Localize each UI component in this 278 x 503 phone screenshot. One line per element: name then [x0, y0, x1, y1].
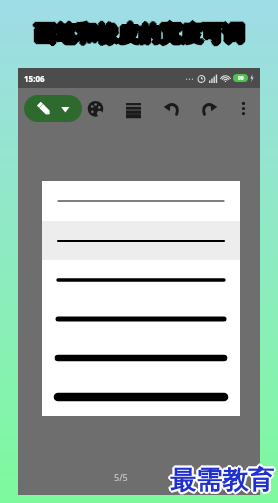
- staticText: 最需教育: [171, 463, 275, 496]
- staticText: 画笔和橡皮的宽度可调: [34, 23, 244, 49]
- staticText: 最需教育: [168, 464, 272, 497]
- button[interactable]: Undo: [158, 95, 184, 121]
- staticText: 最需教育: [170, 464, 274, 497]
- button[interactable]: Redo: [196, 95, 222, 121]
- staticText: 99: [238, 75, 244, 82]
- staticText: 最需教育: [171, 465, 275, 498]
- staticText: 最需教育: [169, 465, 273, 498]
- button[interactable]: Colour palette: [82, 95, 108, 121]
- staticText: 画笔和橡皮的宽度可调: [33, 22, 243, 48]
- staticText: 画笔和橡皮的宽度可调: [35, 22, 245, 48]
- staticText: 画笔和橡皮的宽度可调: [36, 21, 246, 47]
- button[interactable]: Pen tool: [24, 95, 82, 122]
- staticText: 画笔和橡皮的宽度可调: [33, 20, 243, 46]
- button[interactable]: Stroke width: [120, 95, 146, 121]
- button[interactable]: Stroke width option 2: [42, 221, 240, 260]
- staticText: 画笔和橡皮的宽度可调: [34, 19, 244, 45]
- staticText: 5/5: [114, 471, 128, 483]
- staticText: 画笔和橡皮的宽度可调: [32, 21, 242, 47]
- staticText: 画笔和橡皮的宽度可调: [35, 20, 245, 46]
- staticText: 最需教育: [172, 464, 276, 497]
- staticText: 画笔和橡皮的宽度可调: [34, 21, 244, 47]
- staticText: 最需教育: [170, 462, 274, 495]
- button[interactable]: Stroke width option 6: [42, 377, 240, 416]
- button[interactable]: Stroke width option 1: [42, 181, 240, 221]
- staticText: 最需教育: [170, 466, 274, 499]
- staticText: 最需教育: [169, 463, 273, 496]
- button[interactable]: More options: [232, 95, 254, 121]
- button[interactable]: Stroke width option 4: [42, 299, 240, 338]
- staticText: 15:06: [24, 73, 45, 84]
- button[interactable]: Stroke width option 3: [42, 260, 240, 299]
- button[interactable]: Stroke width option 5: [42, 338, 240, 377]
